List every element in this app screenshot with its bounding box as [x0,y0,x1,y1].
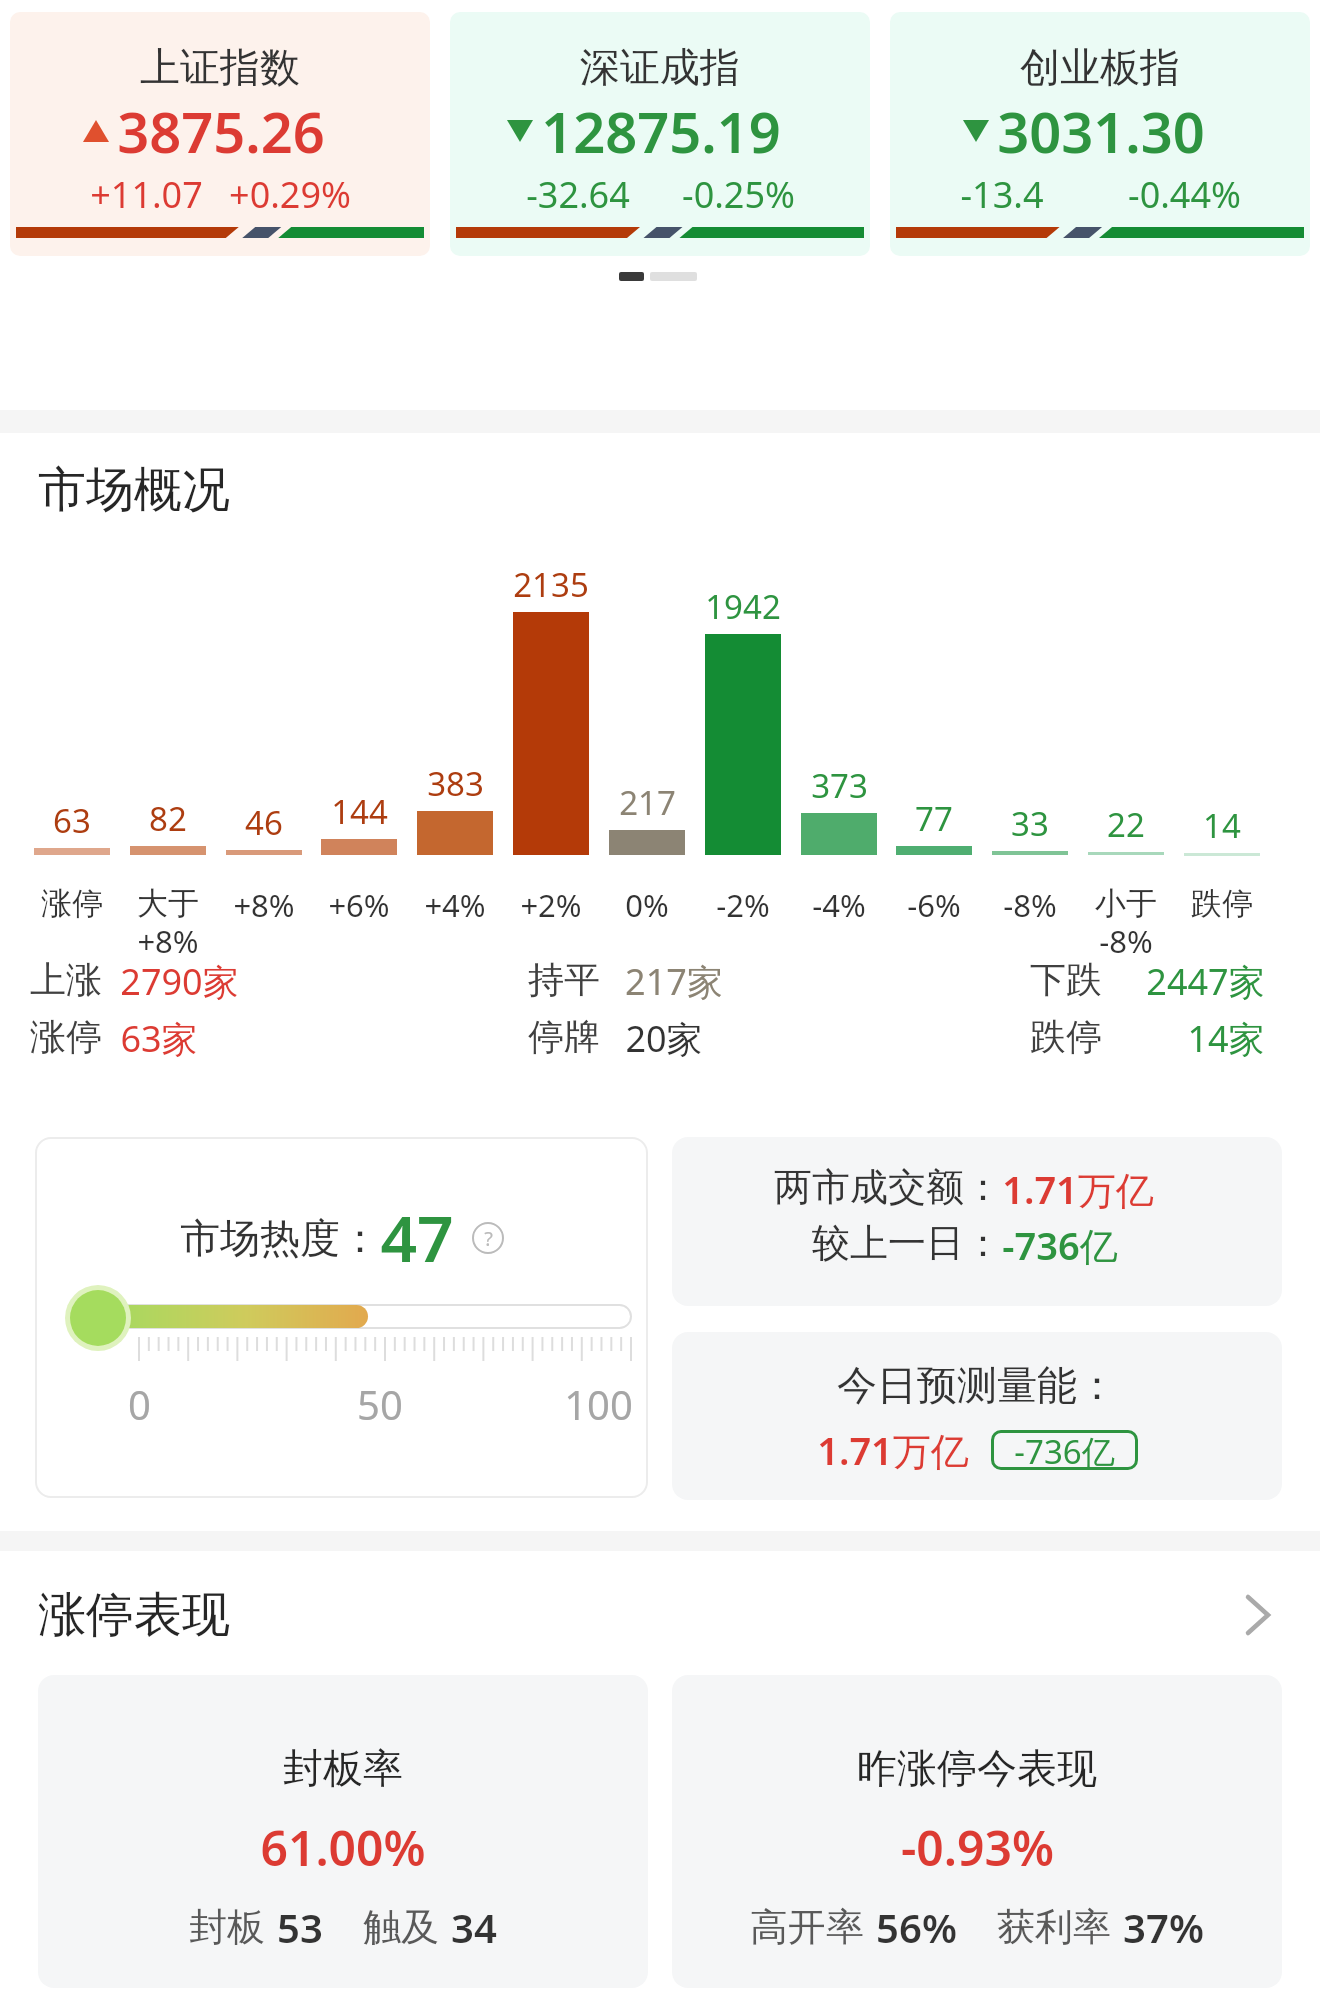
button[interactable]: 上证指数 [10,12,430,256]
staticText: 涨停表现 [38,1585,230,1645]
staticText: 涨停 [41,884,103,923]
staticText: -4% [812,884,866,926]
staticText: 217 [619,780,676,825]
staticText: 1.71万亿 [1002,1163,1154,1215]
staticText: -13.4 [960,170,1044,219]
staticText: 涨停 [30,1014,102,1059]
staticText: 3031.30 [997,93,1205,169]
staticText: -6% [907,884,961,926]
staticText: 封板率 [283,1743,403,1793]
staticText: 22 [1107,802,1145,847]
staticText: 上证指数 [140,42,300,92]
staticText: 2790家 [120,957,239,1006]
staticText: 50 [357,1377,403,1431]
staticText: 上涨 [30,957,102,1002]
staticText: -0.44% [1128,170,1241,219]
button[interactable]: 深证成指 [450,12,870,256]
staticText: 46 [245,800,283,845]
staticText: 较上一日： [812,1219,1002,1267]
staticText: +6% [328,884,390,926]
staticText: 0% [625,884,669,926]
staticText: 创业板指 [1020,42,1180,92]
staticText: +2% [520,884,582,926]
staticText: 77 [915,796,953,841]
staticText: -8% [1003,884,1057,926]
button[interactable]: 两市成交额： [672,1137,1282,1306]
staticText: 56% [876,1900,957,1954]
staticText: 34 [451,1900,497,1954]
staticText: 373 [811,763,868,808]
button[interactable]: 昨涨停今表现 [672,1675,1282,1988]
staticText: -0.93% [901,1815,1054,1880]
staticText: ? [484,1225,493,1252]
staticText: +4% [424,884,486,926]
staticText: 63家 [120,1014,198,1063]
staticText: 获利率 [997,1903,1111,1951]
staticText: 触及 [363,1903,439,1951]
staticText: 1942 [705,584,781,629]
staticText: 217家 [625,957,723,1006]
staticText: -736亿 [1002,1219,1118,1271]
staticText: +0.29% [229,170,351,219]
staticText: 2447家 [1146,957,1265,1006]
staticText: 持平 [528,957,600,1002]
staticText: 今日预测量能： [837,1360,1117,1410]
staticText: 跌停 [1030,1014,1102,1059]
staticText: +11.07 [90,170,203,219]
staticText: -0.25% [682,170,795,219]
staticText: 61.00% [260,1815,426,1880]
staticText: 停牌 [528,1014,600,1059]
staticText: 33 [1011,801,1049,846]
staticText: 昨涨停今表现 [857,1743,1097,1793]
staticText: 12875.19 [541,93,781,169]
staticText: 63 [53,798,91,843]
staticText: 下跌 [1030,957,1102,1002]
staticText: 82 [149,796,187,841]
button[interactable]: 涨停表现 [0,1585,1320,1645]
button[interactable]: 今日预测量能： [672,1332,1282,1500]
staticText: 2135 [513,562,589,607]
staticText: 大于 +8% [137,884,199,962]
staticText: 47 [380,1194,454,1281]
staticText: 14家 [1187,1014,1265,1063]
staticText: 市场热度： [180,1213,380,1263]
staticText: 两市成交额： [774,1163,1002,1211]
staticText: 深证成指 [580,42,740,92]
staticText: 100 [564,1377,633,1431]
staticText: 0 [128,1377,151,1431]
staticText: 383 [427,761,484,806]
staticText: 20家 [625,1014,703,1063]
staticText: -736亿 [1014,1429,1115,1469]
staticText: -2% [716,884,770,926]
staticText: 跌停 [1191,884,1253,923]
staticText: 14 [1203,803,1241,848]
staticText: +8% [233,884,295,926]
staticText: 封板 [189,1903,265,1951]
staticText: 3875.26 [117,93,325,169]
staticText: 37% [1123,1900,1204,1954]
button[interactable]: 市场热度： [35,1137,648,1498]
staticText: 小于 -8% [1095,884,1157,962]
staticText: -32.64 [526,170,630,219]
staticText: 1.71万亿 [817,1424,969,1476]
staticText: 市场概况 [38,460,230,520]
button[interactable]: 创业板指 [890,12,1310,256]
button[interactable]: 封板率 [38,1675,648,1988]
staticText: 53 [277,1900,323,1954]
staticText: 144 [331,789,388,834]
staticText: 高开率 [750,1903,864,1951]
